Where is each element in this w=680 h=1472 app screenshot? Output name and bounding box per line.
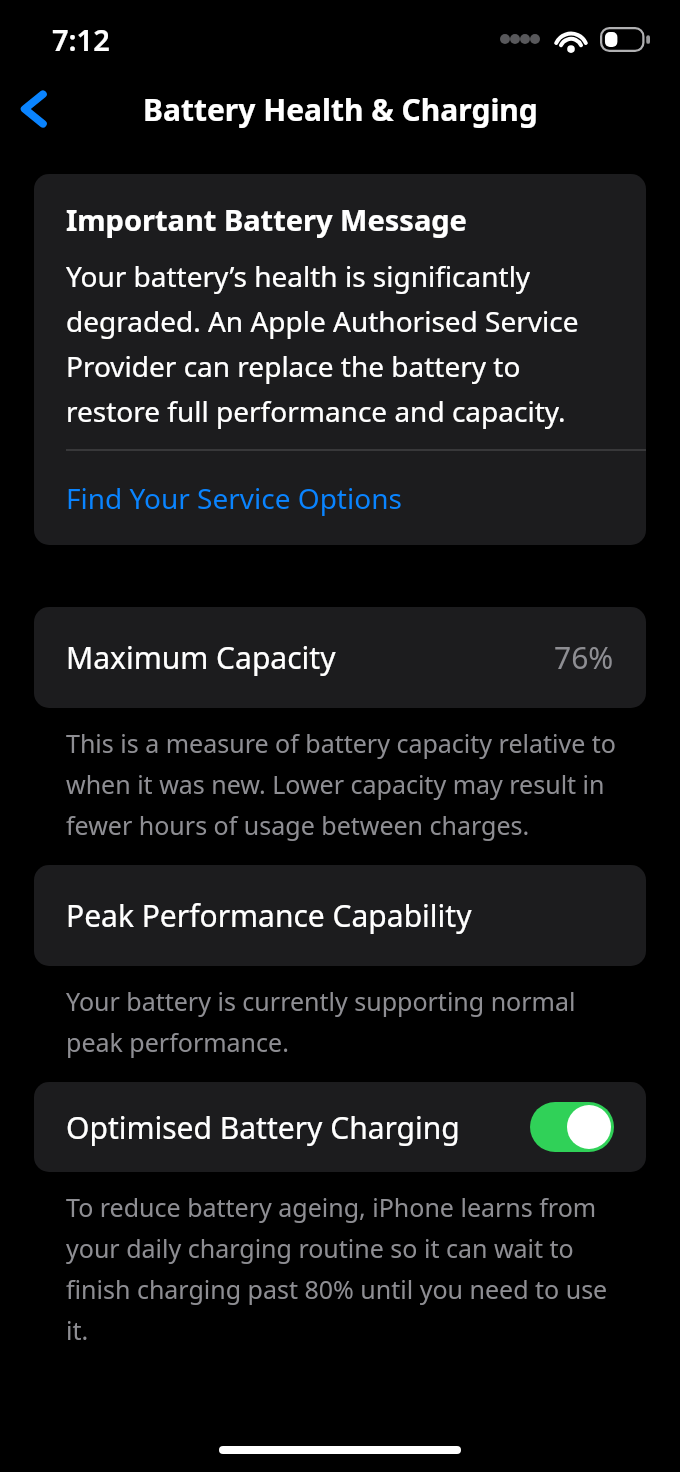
- staticText: Battery Health & Charging: [143, 89, 538, 130]
- staticText: This is a measure of battery capacity re…: [66, 726, 630, 843]
- button[interactable]: Back: [0, 76, 66, 142]
- staticText: Your battery’s health is significantly d…: [66, 257, 614, 431]
- staticText: Important Battery Message: [66, 200, 467, 239]
- staticText: Optimised Battery Charging: [66, 1107, 530, 1148]
- staticText: To reduce battery ageing, iPhone learns …: [66, 1190, 630, 1348]
- staticText: Your battery is currently supporting nor…: [66, 984, 630, 1060]
- staticText: 76%: [554, 637, 614, 678]
- button[interactable]: Optimised Battery Charging toggle: [530, 1102, 614, 1152]
- staticText: Maximum Capacity: [66, 637, 554, 678]
- staticText: 7:12: [52, 20, 110, 59]
- staticText: Peak Performance Capability: [66, 895, 472, 936]
- button[interactable]: Maximum Capacity: [34, 607, 646, 708]
- button[interactable]: Peak Performance Capability: [34, 865, 646, 966]
- button[interactable]: Optimised Battery Charging: [34, 1082, 646, 1172]
- button[interactable]: Find Your Service Options: [34, 451, 646, 545]
- staticText: Find Your Service Options: [66, 479, 402, 517]
